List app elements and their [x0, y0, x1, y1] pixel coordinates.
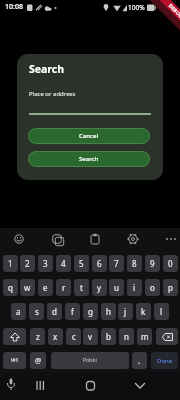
staticText: 6 — [97, 258, 102, 269]
staticText: o — [150, 282, 155, 293]
staticText: f — [71, 306, 74, 317]
staticText: y — [97, 282, 102, 293]
button[interactable]: r — [56, 279, 71, 296]
button[interactable]: 7 — [109, 255, 124, 272]
staticText: 1 — [8, 258, 13, 269]
staticText: 8 — [132, 258, 137, 269]
button[interactable] — [3, 328, 26, 345]
staticText: j — [124, 306, 127, 317]
staticText: 3 — [43, 258, 48, 269]
button[interactable]: z — [30, 328, 45, 345]
staticText: !#1 — [11, 357, 19, 364]
staticText: 5 — [79, 258, 84, 269]
button[interactable]: k — [136, 303, 151, 320]
staticText: u — [114, 282, 119, 293]
button[interactable]: v — [83, 328, 98, 345]
button[interactable]: 4 — [56, 255, 71, 272]
button[interactable]: 1 — [3, 255, 18, 272]
staticText: s — [35, 306, 39, 317]
staticText: a — [16, 306, 21, 317]
staticText: 4 — [61, 258, 66, 269]
button[interactable] — [4, 376, 20, 392]
staticText: q — [8, 282, 13, 293]
staticText: 0 — [168, 258, 173, 269]
button[interactable]: i — [127, 279, 142, 296]
button[interactable]: g — [83, 303, 98, 320]
button[interactable]: j — [118, 303, 133, 320]
button[interactable] — [82, 376, 98, 392]
staticText: b — [106, 331, 111, 342]
button[interactable]: c — [66, 328, 81, 345]
staticText: 10:08 — [5, 2, 23, 12]
button[interactable]: !#1 — [3, 352, 26, 369]
staticText: w — [24, 282, 31, 293]
button[interactable]: o — [145, 279, 160, 296]
button[interactable]: Cancel — [28, 128, 150, 144]
staticText: n — [124, 331, 129, 342]
button[interactable]: b — [101, 328, 116, 345]
button[interactable]: a — [11, 303, 26, 320]
staticText: . — [138, 355, 141, 366]
staticText: 100% — [128, 3, 145, 12]
staticText: 7 — [114, 258, 119, 269]
staticText: k — [141, 306, 146, 317]
staticText: z — [36, 331, 40, 342]
button[interactable]: 8 — [127, 255, 142, 272]
staticText: x — [53, 331, 58, 342]
staticText: c — [72, 331, 76, 342]
staticText: Search — [79, 155, 99, 163]
staticText: g — [88, 306, 93, 317]
staticText: p — [168, 282, 173, 293]
staticText: DEBUG — [167, 2, 180, 20]
button[interactable] — [132, 376, 148, 392]
button[interactable]: s — [29, 303, 44, 320]
button[interactable] — [32, 376, 48, 392]
button[interactable]: p — [163, 279, 178, 296]
button[interactable]: 0 — [163, 255, 178, 272]
button[interactable]: t — [74, 279, 89, 296]
button[interactable]: e — [38, 279, 53, 296]
button[interactable]: q — [3, 279, 18, 296]
staticText: Polski — [83, 357, 97, 364]
button[interactable]: 6 — [92, 255, 107, 272]
button[interactable] — [156, 328, 178, 345]
staticText: Cancel — [79, 132, 99, 140]
staticText: r — [62, 282, 66, 293]
staticText: l — [160, 306, 163, 317]
staticText: Done — [157, 357, 173, 365]
button[interactable]: f — [65, 303, 80, 320]
staticText: t — [80, 282, 83, 293]
button[interactable]: 5 — [74, 255, 89, 272]
staticText: Search — [29, 62, 65, 76]
button[interactable]: Search — [28, 151, 150, 167]
staticText: Place or address — [29, 90, 76, 98]
button[interactable]: x — [48, 328, 63, 345]
button[interactable]: Polski — [51, 352, 129, 369]
button[interactable]: 3 — [38, 255, 53, 272]
button[interactable]: . — [132, 352, 147, 369]
button[interactable]: u — [109, 279, 124, 296]
button[interactable]: @ — [30, 352, 46, 369]
button[interactable]: 2 — [20, 255, 35, 272]
button[interactable]: l — [154, 303, 169, 320]
button[interactable]: Done — [151, 352, 178, 369]
staticText: @ — [35, 356, 42, 366]
staticText: h — [106, 306, 111, 317]
staticText: 9 — [150, 258, 155, 269]
staticText: i — [133, 282, 136, 293]
button[interactable]: 9 — [145, 255, 160, 272]
staticText: m — [141, 331, 149, 342]
button[interactable]: w — [20, 279, 35, 296]
button[interactable]: d — [47, 303, 62, 320]
staticText: d — [52, 306, 57, 317]
button[interactable]: m — [137, 328, 152, 345]
button[interactable]: h — [101, 303, 116, 320]
staticText: e — [43, 282, 48, 293]
button[interactable]: y — [92, 279, 107, 296]
button[interactable]: n — [119, 328, 134, 345]
staticText: v — [88, 331, 93, 342]
staticText: 2 — [25, 258, 30, 269]
